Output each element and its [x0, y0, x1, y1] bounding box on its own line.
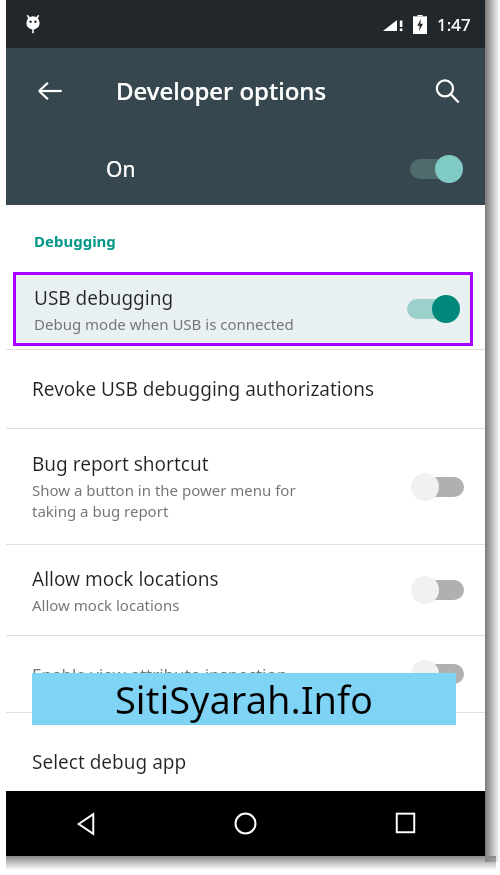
button[interactable]: Back	[6, 791, 165, 856]
staticText: USB debugging	[34, 285, 174, 311]
button[interactable]: Enable view attribute inspection	[6, 636, 485, 712]
button[interactable]: Allow mock locations	[6, 545, 485, 635]
staticText: Debug mode when USB is connected	[34, 314, 294, 334]
staticText: 1:47	[437, 13, 471, 36]
staticText: Revoke USB debugging authorizations	[32, 376, 375, 402]
button[interactable]: Revoke USB debugging authorizations	[6, 350, 485, 428]
staticText: Debugging	[34, 231, 116, 251]
staticText: Enable view attribute inspection	[32, 663, 411, 686]
button[interactable]: USB debugging	[16, 275, 470, 343]
button[interactable]: Select debug app	[6, 713, 485, 791]
button[interactable]: Home	[165, 791, 325, 856]
button[interactable]: On	[6, 133, 485, 205]
staticText: Developer options	[116, 74, 327, 107]
staticText: Allow mock locations	[32, 566, 219, 592]
staticText: SitiSyarah.Info	[115, 673, 374, 725]
button[interactable]: Recent apps	[325, 791, 485, 856]
staticText: On	[106, 155, 136, 184]
staticText: Show a button in the power menu for taki…	[32, 480, 296, 522]
button[interactable]: Bug report shortcut	[6, 429, 485, 544]
button[interactable]: Back	[26, 67, 74, 115]
staticText: Select debug app	[32, 749, 187, 775]
button[interactable]: Search	[423, 67, 471, 115]
staticText: Allow mock locations	[32, 595, 180, 615]
staticText: Bug report shortcut	[32, 451, 209, 477]
